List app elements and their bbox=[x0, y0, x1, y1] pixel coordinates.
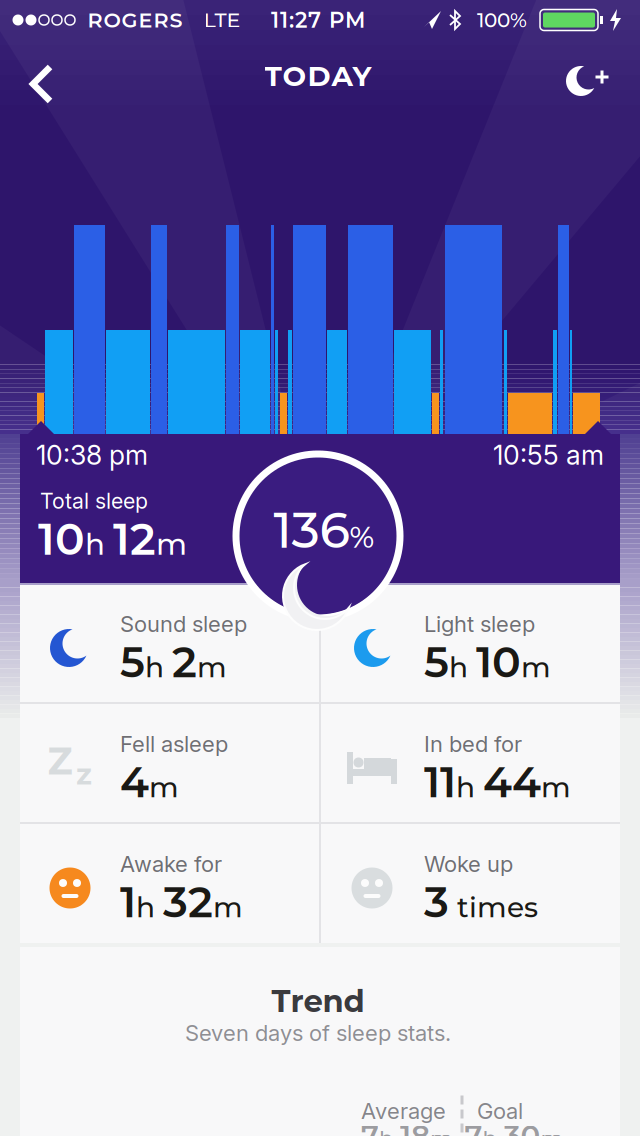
staticText: 7h 30m bbox=[464, 1119, 563, 1136]
button[interactable] bbox=[551, 45, 621, 115]
staticText: 5h 2m bbox=[120, 637, 227, 687]
staticText: z bbox=[76, 756, 92, 792]
staticText: 136% bbox=[273, 501, 374, 559]
staticText: In bed for bbox=[424, 731, 522, 757]
staticText: Goal bbox=[477, 1098, 523, 1124]
staticText: Woke up bbox=[424, 851, 513, 877]
staticText: Light sleep bbox=[424, 611, 535, 637]
button[interactable]: Trend bbox=[20, 947, 620, 1136]
staticText: Total sleep bbox=[40, 488, 148, 514]
staticText: 10h 12m bbox=[38, 513, 187, 565]
staticText: 7h 18m bbox=[361, 1119, 453, 1136]
staticText: LTE bbox=[203, 7, 240, 33]
staticText: 3 times bbox=[424, 877, 538, 927]
staticText: Z bbox=[47, 738, 72, 784]
staticText: 1h 32m bbox=[120, 877, 243, 927]
staticText: TODAY bbox=[264, 59, 371, 93]
staticText: 5h 10m bbox=[424, 637, 551, 687]
staticText: Average bbox=[361, 1098, 446, 1124]
staticText: Seven days of sleep stats. bbox=[185, 1020, 451, 1046]
staticText: Sound sleep bbox=[120, 611, 247, 637]
staticText: 100% bbox=[477, 8, 527, 32]
staticText: Fell asleep bbox=[120, 731, 228, 757]
staticText: Trend bbox=[271, 982, 364, 1020]
staticText: 11h 44m bbox=[424, 757, 571, 807]
staticText: 10:38 pm bbox=[36, 439, 148, 471]
staticText: 4m bbox=[120, 757, 179, 807]
staticText: 10:55 am bbox=[493, 439, 604, 471]
staticText: ROGERS bbox=[87, 7, 182, 33]
button[interactable] bbox=[10, 54, 70, 114]
staticText: Awake for bbox=[120, 851, 222, 877]
staticText: 11:27 PM bbox=[271, 7, 365, 33]
